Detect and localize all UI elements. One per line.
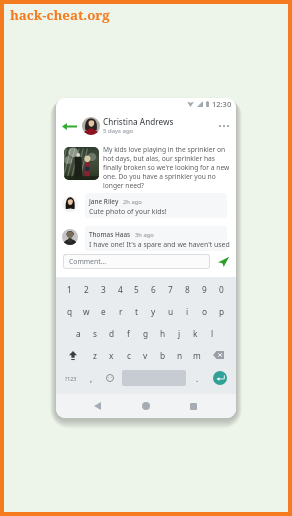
staticText: 2 — [84, 284, 89, 295]
staticText: x — [109, 350, 114, 361]
staticText: q — [67, 306, 73, 317]
staticText: I have one! It's a spare and we haven't … — [89, 240, 230, 249]
button[interactable]: 0 — [213, 279, 230, 299]
staticText: v — [143, 350, 148, 361]
staticText: k — [193, 328, 198, 339]
staticText: 12:30 — [212, 99, 232, 109]
staticText: a — [76, 328, 81, 339]
staticText: u — [168, 306, 174, 317]
button[interactable]: w — [78, 301, 95, 321]
staticText: g — [143, 328, 149, 339]
staticText: Cute photo of your kids! — [89, 207, 167, 216]
staticText: 6 — [151, 284, 156, 295]
button[interactable]: 8 — [179, 279, 196, 299]
button[interactable]: Emoji — [102, 368, 117, 388]
staticText: Comment... — [69, 257, 107, 266]
button[interactable] — [85, 193, 227, 218]
staticText: i — [186, 306, 189, 317]
button[interactable]: y — [145, 301, 162, 321]
button[interactable]: 1 — [61, 279, 78, 299]
button[interactable]: Recents — [182, 395, 204, 417]
button[interactable]: t — [128, 301, 145, 321]
button[interactable]: q — [61, 301, 78, 321]
staticText: 5 — [134, 284, 139, 295]
button[interactable]: v — [137, 345, 154, 365]
button[interactable]: Backspace — [207, 345, 229, 365]
staticText: w — [83, 306, 90, 317]
button[interactable]: , — [84, 368, 98, 388]
button[interactable]: Enter — [213, 371, 227, 385]
button[interactable]: e — [95, 301, 112, 321]
button[interactable]: Shift — [63, 345, 83, 365]
staticText: z — [93, 350, 97, 361]
staticText: hack-cheat.org — [10, 6, 110, 24]
button[interactable]: f — [120, 323, 137, 343]
button[interactable]: c — [120, 345, 137, 365]
staticText: 9 — [202, 284, 207, 295]
staticText: 5 days ago — [103, 127, 134, 135]
button[interactable]: 9 — [196, 279, 213, 299]
button[interactable]: Symbols — [59, 368, 83, 388]
button[interactable]: Home — [135, 395, 157, 417]
staticText: 0 — [219, 284, 224, 295]
staticText: l — [211, 328, 214, 339]
staticText: m — [193, 350, 201, 361]
button[interactable]: g — [137, 323, 154, 343]
button[interactable]: More options — [214, 116, 234, 136]
staticText: y — [151, 306, 156, 317]
staticText: ?123 — [65, 375, 77, 382]
button[interactable]: k — [187, 323, 204, 343]
staticText: 3h ago — [135, 231, 154, 239]
button[interactable]: u — [162, 301, 179, 321]
button[interactable]: s — [86, 323, 103, 343]
staticText: 1 — [67, 284, 72, 295]
button[interactable]: b — [154, 345, 171, 365]
staticText: f — [127, 328, 130, 339]
staticText: n — [177, 350, 183, 361]
staticText: Thomas Haas — [89, 230, 131, 239]
button[interactable] — [85, 226, 227, 251]
staticText: 2h ago — [123, 198, 142, 206]
staticText: 3 — [101, 284, 106, 295]
staticText: d — [109, 328, 115, 339]
staticText: s — [93, 328, 97, 339]
button[interactable]: 5 — [128, 279, 145, 299]
button[interactable]: a — [70, 323, 87, 343]
staticText: Jane Riley — [89, 197, 119, 206]
staticText: b — [160, 350, 166, 361]
staticText: . — [196, 373, 199, 384]
staticText: o — [202, 306, 208, 317]
button[interactable]: m — [188, 345, 205, 365]
button[interactable]: j — [171, 323, 188, 343]
staticText: My kids love playing in the sprinkler on… — [103, 145, 230, 190]
button[interactable]: i — [179, 301, 196, 321]
button[interactable]: n — [171, 345, 188, 365]
button[interactable]: p — [213, 301, 230, 321]
button[interactable]: 6 — [145, 279, 162, 299]
button[interactable]: z — [86, 345, 103, 365]
button[interactable]: x — [103, 345, 120, 365]
button[interactable]: l — [204, 323, 221, 343]
staticText: 8 — [185, 284, 190, 295]
button[interactable]: Back — [86, 395, 108, 417]
button[interactable]: o — [196, 301, 213, 321]
button[interactable]: 7 — [162, 279, 179, 299]
button[interactable]: Back — [58, 115, 80, 137]
staticText: 7 — [168, 284, 173, 295]
button[interactable]: d — [103, 323, 120, 343]
staticText: r — [119, 306, 123, 317]
button[interactable]: 3 — [95, 279, 112, 299]
button[interactable]: 4 — [112, 279, 129, 299]
button[interactable]: r — [112, 301, 129, 321]
staticText: , — [90, 373, 93, 384]
staticText: p — [219, 306, 225, 317]
button[interactable]: . — [190, 368, 204, 388]
button[interactable]: 2 — [78, 279, 95, 299]
button[interactable]: Send — [214, 254, 232, 269]
staticText: t — [135, 306, 138, 317]
staticText: c — [127, 350, 131, 361]
button[interactable]: Comment... — [64, 255, 209, 268]
button[interactable]: h — [154, 323, 171, 343]
staticText: h — [160, 328, 166, 339]
